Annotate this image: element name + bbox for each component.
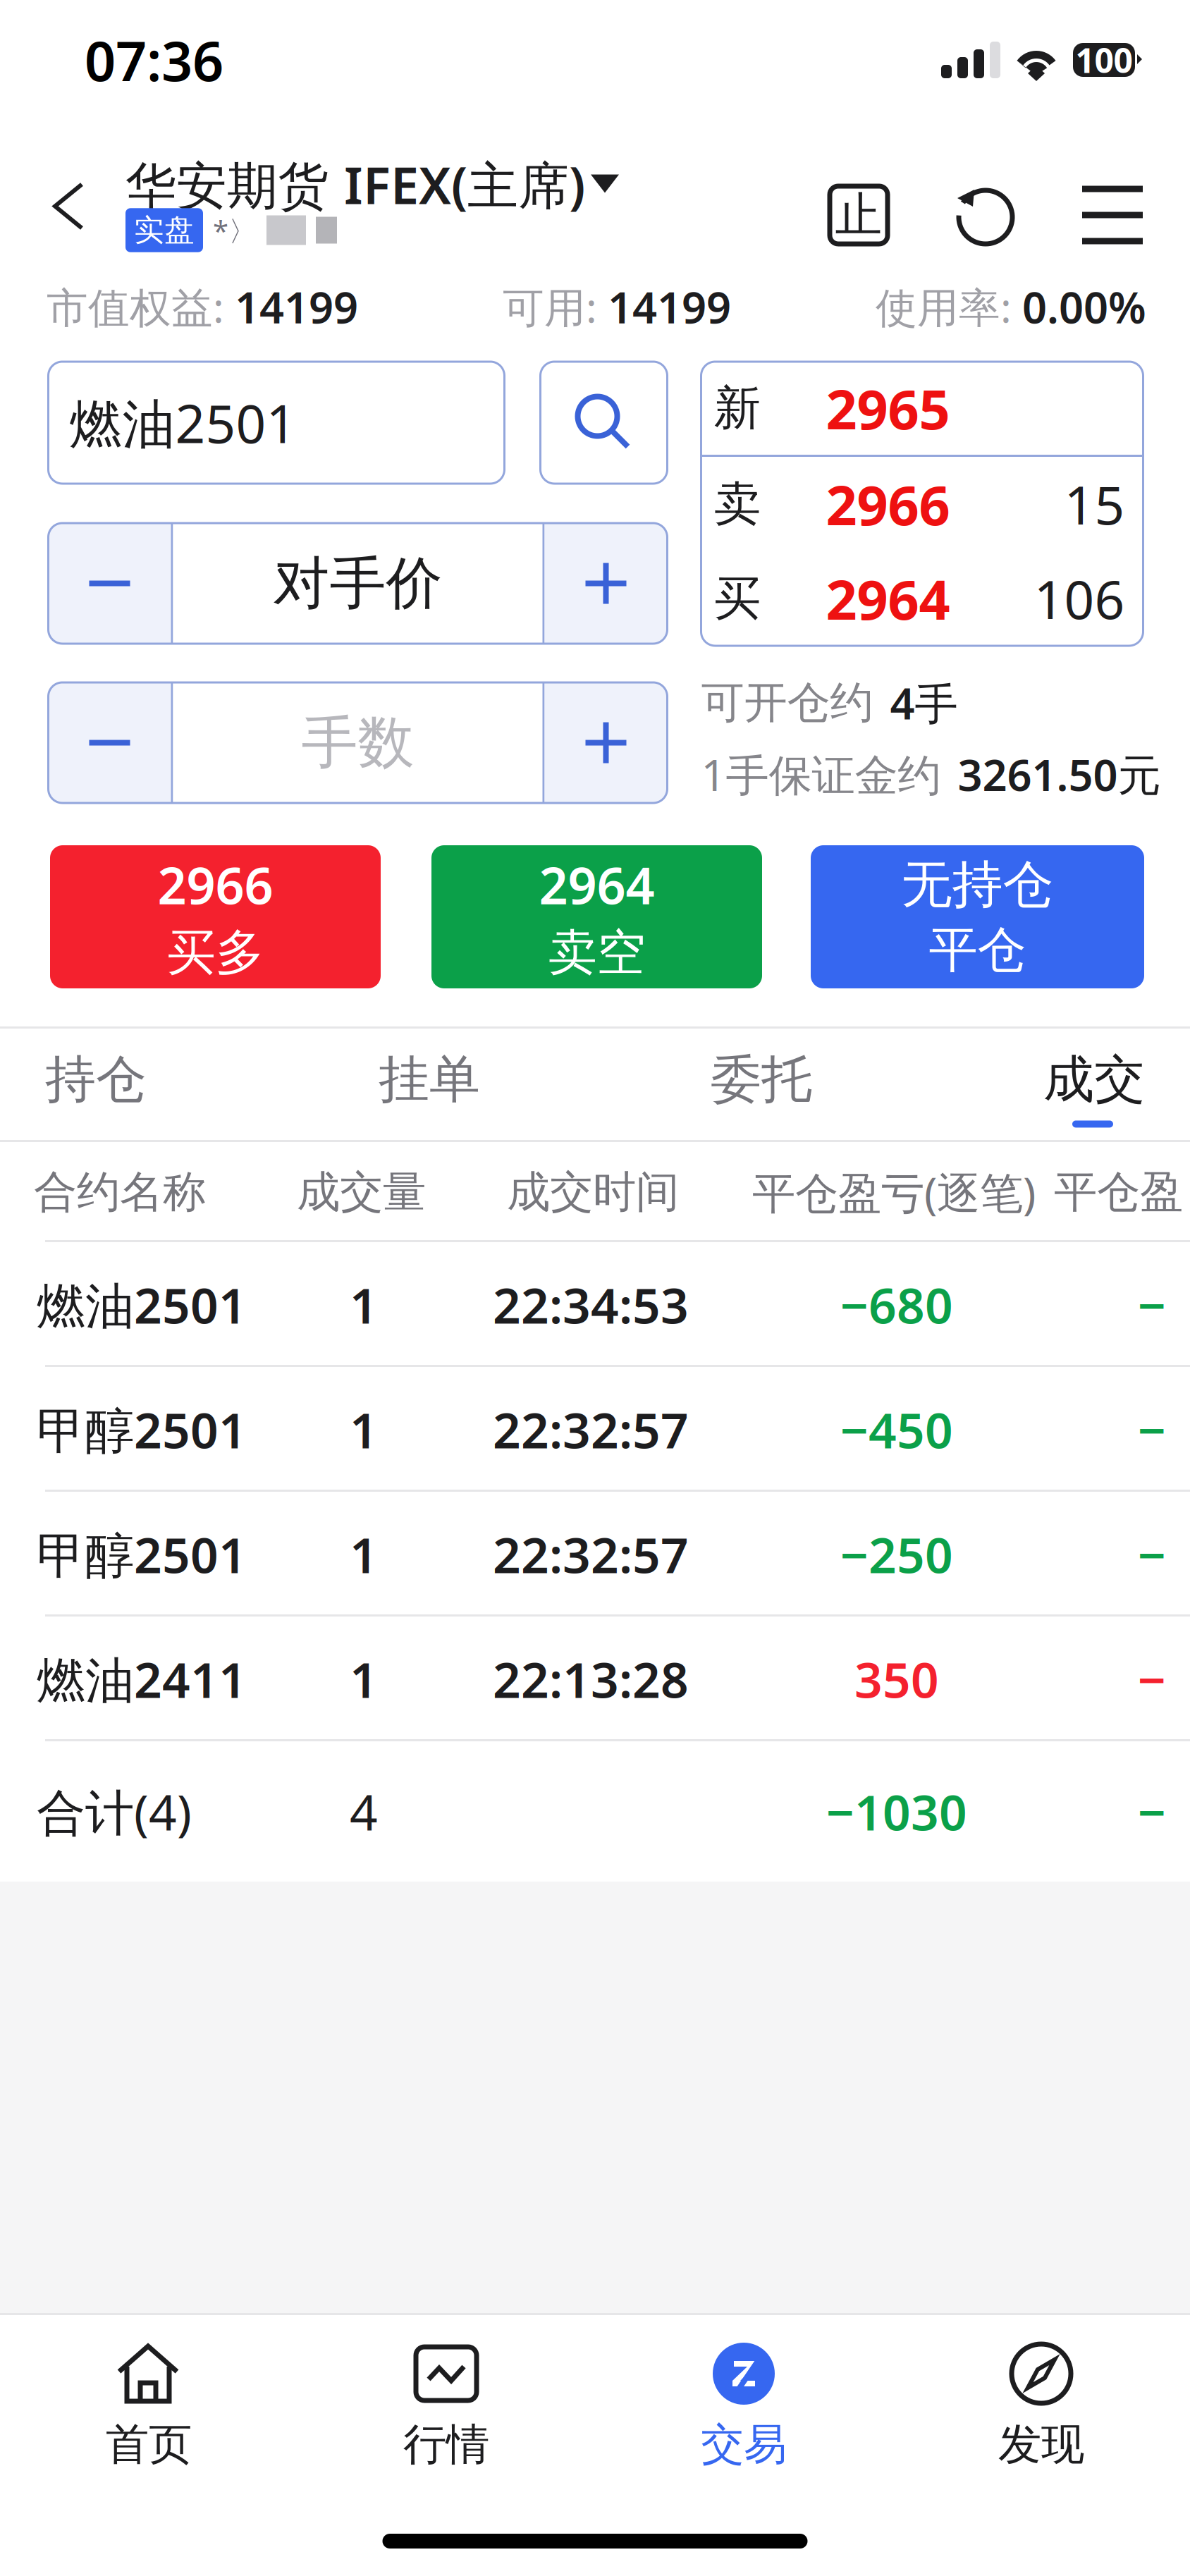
staticText: 可开仓约 <box>701 676 873 729</box>
staticText: 合约名称 <box>34 1166 206 1219</box>
staticText: 4 <box>350 1779 378 1844</box>
staticText: 2964 <box>539 851 655 918</box>
staticText: 2966 <box>158 851 273 918</box>
staticText: 持仓 <box>45 1048 147 1111</box>
button[interactable]: 2964 <box>431 845 762 988</box>
staticText: − <box>1138 1522 1166 1587</box>
button[interactable]: 燃油2501 <box>0 1242 1190 1367</box>
staticText: 14199 <box>235 278 358 335</box>
staticText: 22:32:57 <box>493 1522 689 1587</box>
button[interactable]: 首页 <box>0 2315 297 2477</box>
staticText: 1 <box>350 1272 378 1337</box>
button[interactable]: 委托 <box>711 1029 1043 1142</box>
staticText: 止 <box>835 186 882 244</box>
staticText: 新 <box>714 379 761 437</box>
staticText: 平仓盈亏(逐笔) <box>752 1163 1036 1221</box>
staticText: 发现 <box>998 2418 1084 2471</box>
staticText: 07:36 <box>85 24 223 96</box>
staticText: 交易 <box>701 2418 787 2471</box>
staticText: 2964 <box>826 562 950 635</box>
button[interactable]: 甲醇2501 <box>0 1492 1190 1617</box>
staticText: −450 <box>840 1397 953 1462</box>
staticText: 华安期货 IFEX(主席) <box>125 151 585 218</box>
staticText: 使用率: <box>876 279 1022 334</box>
staticText: 可用: <box>503 279 608 334</box>
staticText: 甲醇2501 <box>37 1397 247 1462</box>
staticText: 100 <box>1075 37 1133 82</box>
staticText: 15 <box>1064 469 1125 539</box>
staticText: 14199 <box>608 278 731 335</box>
staticText: 22:32:57 <box>493 1397 689 1462</box>
button[interactable]: 发现 <box>892 2315 1190 2477</box>
staticText: 无持仓 <box>901 854 1054 916</box>
staticText: 22:13:28 <box>493 1646 689 1711</box>
staticText: − <box>1138 1646 1166 1711</box>
button[interactable]: Refresh <box>951 180 1020 250</box>
staticText: 卖 <box>714 475 761 533</box>
button[interactable]: 合计(4) <box>0 1741 1190 1882</box>
button[interactable]: Search <box>540 362 667 484</box>
button[interactable]: 甲醇2501 <box>0 1367 1190 1492</box>
staticText: 对手价 <box>273 549 442 618</box>
staticText: 卖空 <box>548 923 645 983</box>
staticText: 成交量 <box>297 1166 426 1219</box>
staticText: 1 <box>350 1522 378 1587</box>
staticText: 成交时间 <box>507 1166 679 1219</box>
button[interactable]: 挂单 <box>379 1029 711 1142</box>
staticText: 22:34:53 <box>493 1272 689 1337</box>
staticText: 行情 <box>403 2418 489 2471</box>
staticText: − <box>1138 1397 1166 1462</box>
button[interactable]: Decrease <box>48 682 171 803</box>
staticText: − <box>1138 1272 1166 1337</box>
staticText: 燃油2501 <box>69 388 296 458</box>
staticText: 0.00% <box>1022 278 1146 335</box>
staticText: 合计(4) <box>37 1779 192 1844</box>
button[interactable]: Stop order <box>830 186 888 244</box>
button[interactable]: Increase <box>545 523 667 644</box>
staticText: 2965 <box>826 372 950 444</box>
button[interactable]: 持仓 <box>45 1029 379 1142</box>
staticText: 委托 <box>711 1048 812 1111</box>
staticText: −1030 <box>826 1779 967 1844</box>
staticText: 平仓盈 <box>1054 1166 1183 1219</box>
button[interactable]: 燃油2411 <box>0 1617 1190 1741</box>
button[interactable]: 成交 <box>1043 1029 1141 1142</box>
button[interactable]: 行情 <box>297 2315 595 2477</box>
button[interactable]: 交易 <box>595 2315 892 2477</box>
staticText: 实盘 <box>134 212 195 249</box>
staticText: 106 <box>1034 564 1125 633</box>
button[interactable]: 无持仓 <box>811 845 1144 988</box>
button[interactable]: Back <box>0 143 125 229</box>
staticText: 1 <box>350 1397 378 1462</box>
button[interactable]: 2966 <box>50 845 381 988</box>
button[interactable]: Decrease <box>48 523 171 644</box>
staticText: 4手 <box>890 674 958 731</box>
staticText: 买多 <box>167 923 264 983</box>
staticText: 甲醇2501 <box>37 1522 247 1587</box>
staticText: 首页 <box>106 2418 192 2471</box>
staticText: 市值权益: <box>47 279 235 334</box>
staticText: 燃油2501 <box>37 1272 247 1337</box>
staticText: 3261.50元 <box>958 745 1161 803</box>
staticText: −250 <box>840 1522 953 1587</box>
staticText: 手数 <box>301 708 414 777</box>
staticText: −680 <box>840 1272 953 1337</box>
staticText: 2966 <box>826 468 950 540</box>
staticText: 1手保证金约 <box>701 745 941 803</box>
staticText: 1 <box>350 1646 378 1711</box>
staticText: 挂单 <box>379 1048 480 1111</box>
staticText: 成交 <box>1043 1048 1145 1111</box>
button[interactable]: Menu <box>1082 179 1143 251</box>
staticText: *〉 <box>213 211 257 249</box>
staticText: 燃油2411 <box>37 1646 247 1711</box>
staticText: 买 <box>714 570 761 627</box>
button[interactable]: Increase <box>545 682 667 803</box>
staticText: 350 <box>854 1646 939 1711</box>
staticText: − <box>1138 1779 1166 1844</box>
staticText: 平仓 <box>929 920 1026 980</box>
